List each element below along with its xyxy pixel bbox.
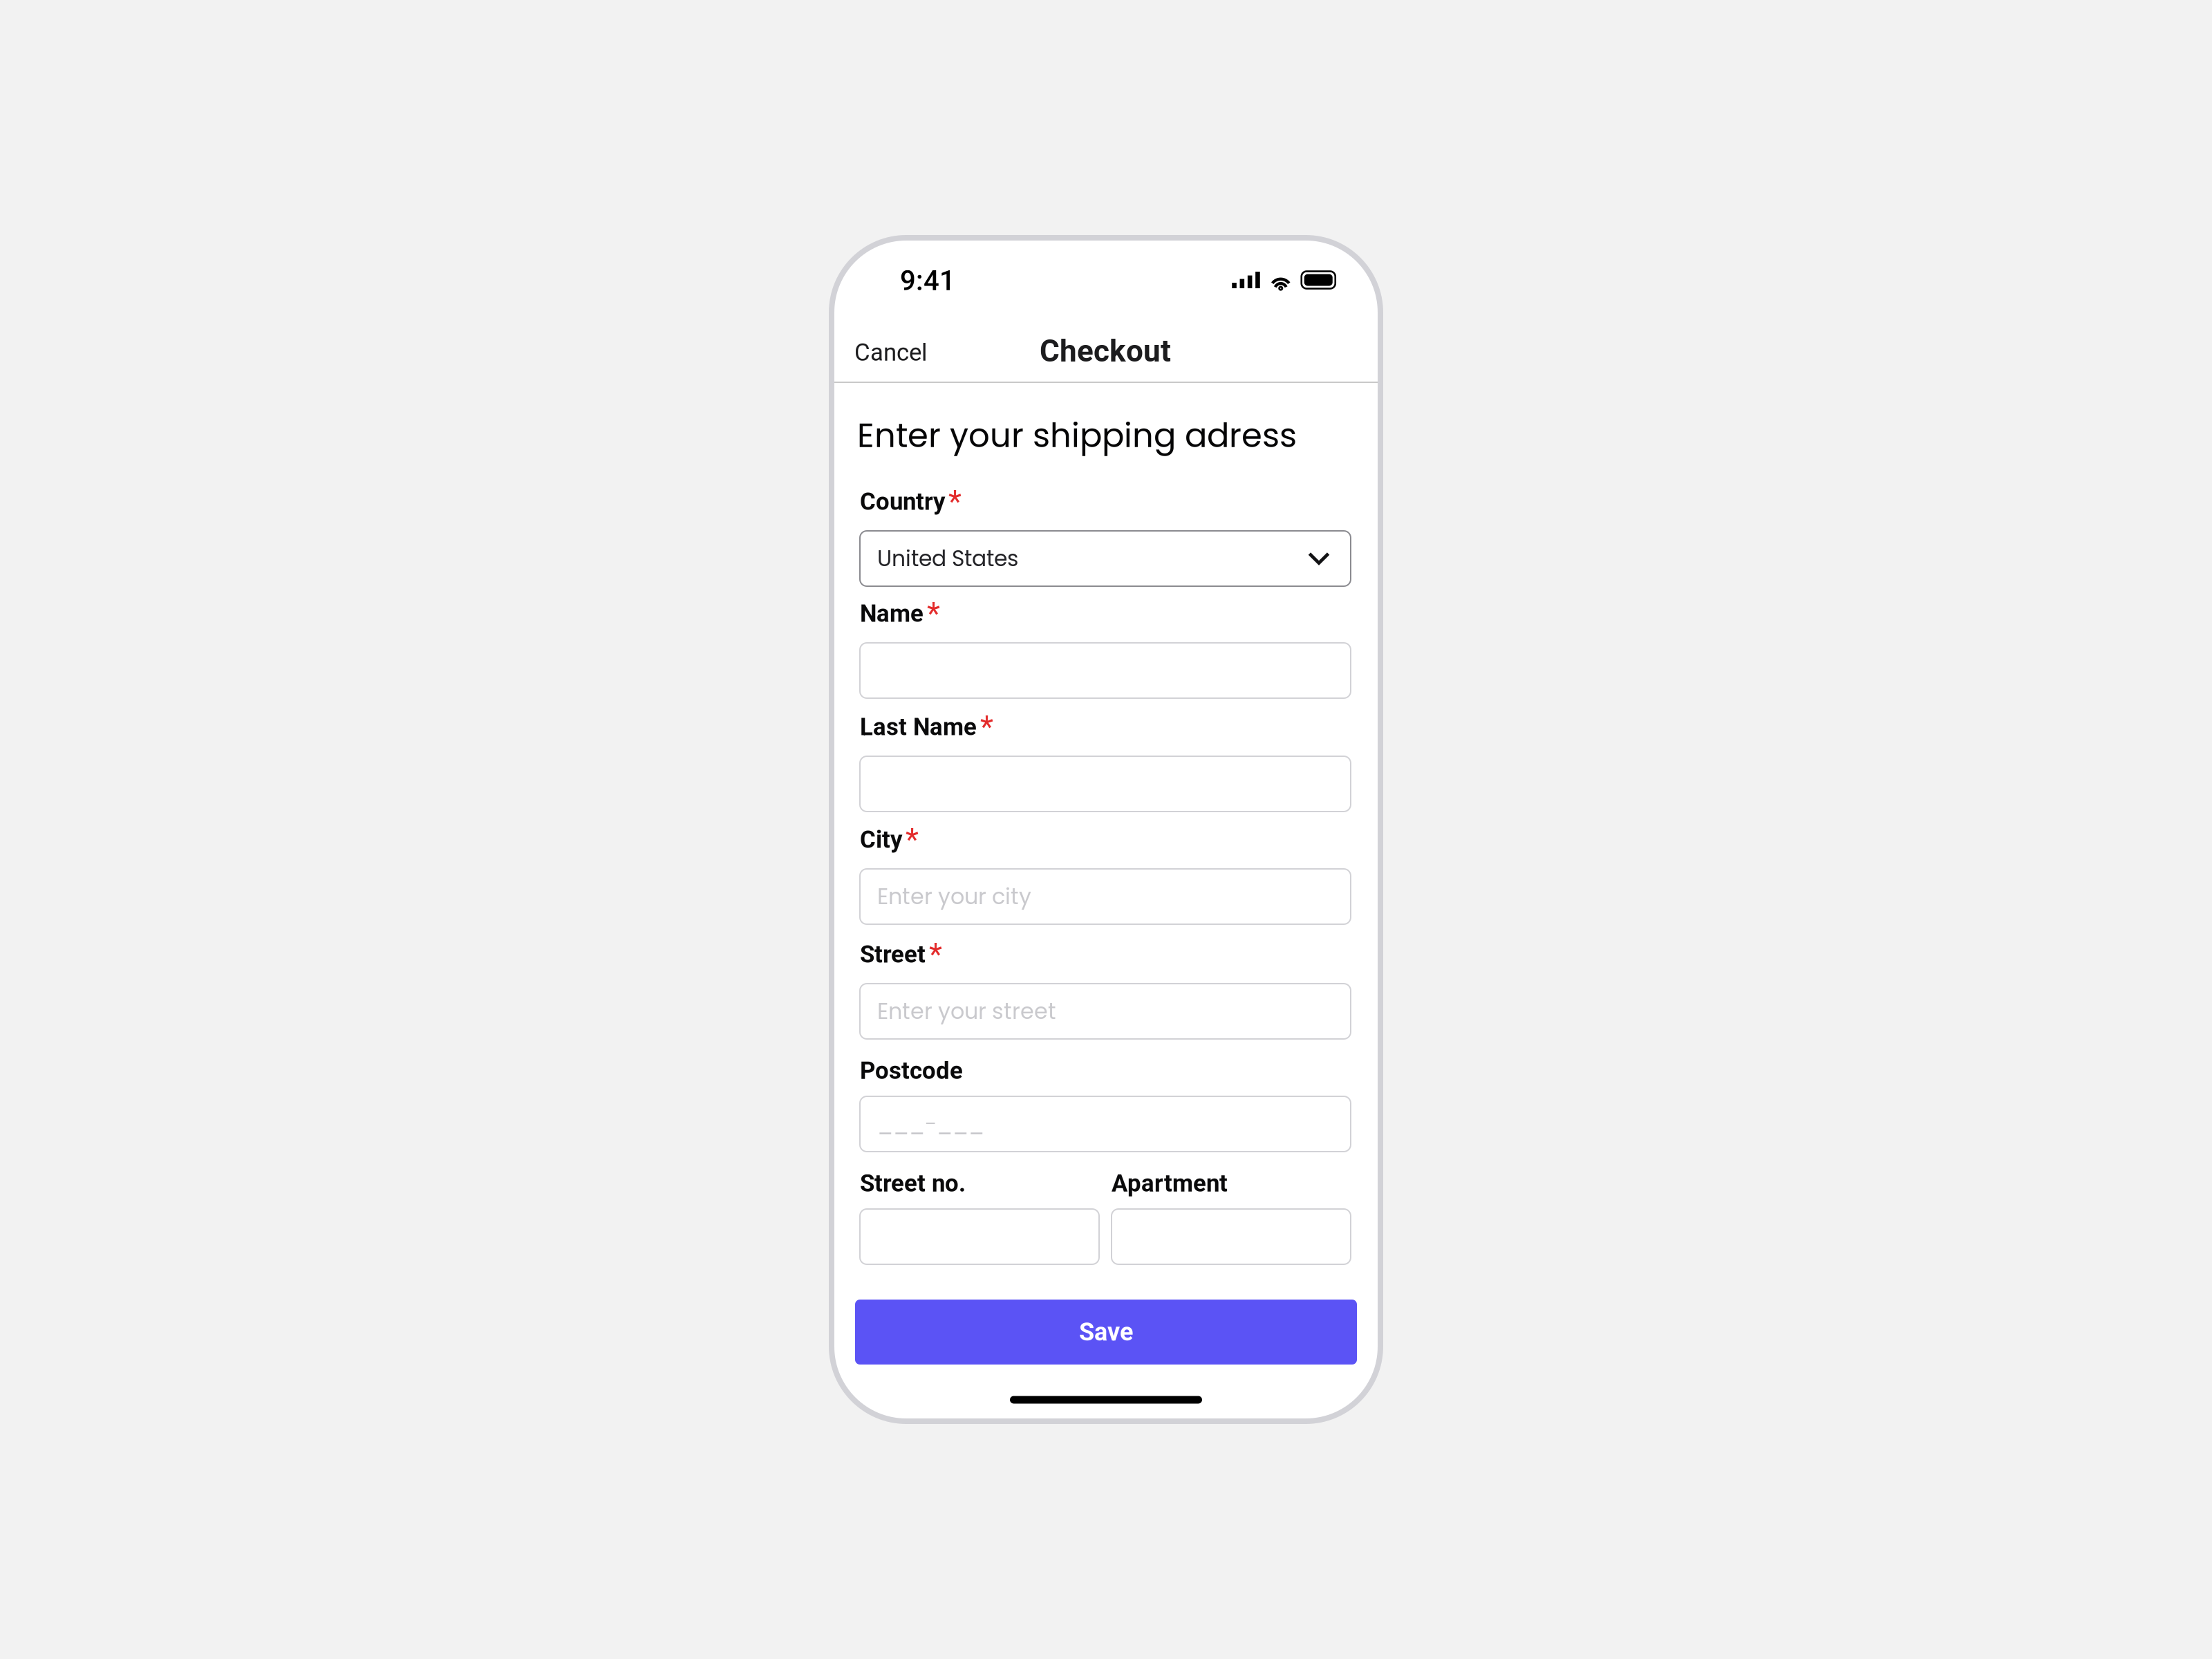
button[interactable]: Postcode xyxy=(860,1096,1351,1152)
staticText: Postcode xyxy=(860,1057,963,1085)
staticText: * xyxy=(980,709,993,745)
staticText: Enter your city xyxy=(877,881,1031,912)
button[interactable]: Street no. xyxy=(860,1209,1099,1264)
staticText: Name xyxy=(860,599,924,628)
staticText: * xyxy=(927,596,940,632)
button[interactable]: Apartment xyxy=(1112,1209,1351,1264)
staticText: Save xyxy=(1079,1317,1133,1347)
button[interactable]: Cancel xyxy=(854,326,958,379)
staticText: * xyxy=(906,822,919,858)
staticText: Street xyxy=(860,940,926,968)
staticText: United States xyxy=(877,543,1018,574)
staticText: Street no. xyxy=(860,1169,966,1197)
staticText: Apartment xyxy=(1112,1169,1228,1197)
staticText: City xyxy=(860,825,902,854)
button[interactable]: Enter your city xyxy=(860,869,1351,924)
staticText: Enter your shipping adress xyxy=(857,412,1297,459)
staticText: * xyxy=(948,484,962,520)
staticText: Enter your street xyxy=(877,996,1056,1027)
button[interactable]: Country, United States xyxy=(860,531,1351,586)
staticText: Country xyxy=(860,487,945,516)
staticText: Checkout xyxy=(1040,333,1171,369)
staticText: ___-___ xyxy=(877,1109,984,1139)
staticText: Last Name xyxy=(860,713,977,741)
button[interactable]: Save xyxy=(855,1300,1357,1365)
button[interactable]: Last Name xyxy=(860,756,1351,812)
staticText: * xyxy=(929,937,942,972)
staticText: 9:41 xyxy=(900,264,955,297)
button[interactable]: Name xyxy=(860,643,1351,698)
staticText: Cancel xyxy=(854,339,927,367)
button[interactable]: Enter your street xyxy=(860,984,1351,1039)
